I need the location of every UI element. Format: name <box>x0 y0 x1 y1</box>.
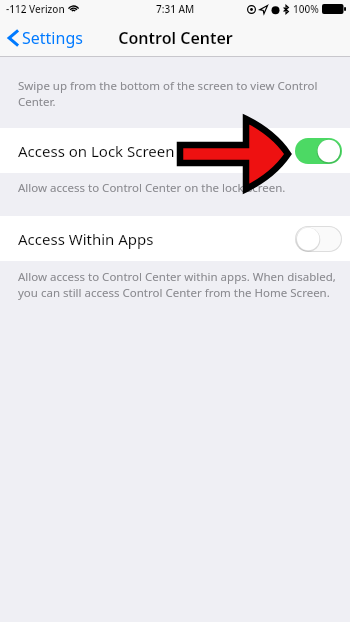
button[interactable]: Access on Lock Screen <box>0 128 350 173</box>
button[interactable]: Access Within Apps <box>0 216 350 261</box>
staticText: Access on Lock Screen <box>18 141 175 161</box>
button[interactable]: Toggle on <box>295 138 342 164</box>
staticText: Control Center <box>118 27 233 49</box>
staticText: 7:31 AM <box>156 2 195 16</box>
staticText: Access Within Apps <box>18 229 154 249</box>
staticText: Allow access to Control Center within ap… <box>18 269 336 300</box>
staticText: Settings <box>22 27 83 49</box>
button[interactable]: Toggle off <box>295 226 342 252</box>
button[interactable]: Settings <box>0 23 93 53</box>
staticText: 100% <box>293 2 319 16</box>
staticText: Allow access to Control Center on the lo… <box>18 180 286 196</box>
staticText: -112 Verizon <box>6 2 65 16</box>
staticText: Swipe up from the bottom of the screen t… <box>18 78 318 109</box>
